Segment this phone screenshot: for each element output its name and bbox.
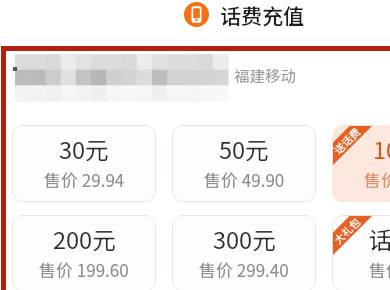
button[interactable]: 30元 bbox=[12, 125, 156, 202]
staticText: 售价 29.94 bbox=[44, 167, 125, 192]
button[interactable]: 300元 bbox=[172, 215, 316, 290]
button[interactable]: 话费包 bbox=[332, 215, 390, 290]
staticText: 200元 bbox=[53, 222, 116, 256]
staticText: 售价 9.90 bbox=[369, 257, 390, 282]
staticText: 送话费 bbox=[332, 125, 364, 157]
staticText: 300元 bbox=[213, 222, 276, 256]
button[interactable]: 50元 bbox=[172, 125, 316, 202]
staticText: 30元 bbox=[59, 132, 109, 166]
button[interactable]: 100元 bbox=[332, 125, 390, 202]
staticText: 话费包 bbox=[369, 222, 390, 256]
staticText: 售价 49.90 bbox=[204, 167, 285, 192]
staticText: 售价 199.60 bbox=[39, 257, 129, 282]
button[interactable]: 200元 bbox=[12, 215, 156, 290]
staticText: 50元 bbox=[219, 132, 269, 166]
staticText: 100元 bbox=[373, 132, 390, 166]
staticText: 售价 299.40 bbox=[199, 257, 289, 282]
button[interactable]: 话费充值 bbox=[184, 2, 209, 27]
staticText: 福建移动 bbox=[234, 64, 297, 86]
staticText: 售价 99.80 bbox=[364, 167, 390, 192]
staticText: 话费充值 bbox=[220, 0, 304, 29]
staticText: 大礼包 bbox=[332, 215, 364, 247]
